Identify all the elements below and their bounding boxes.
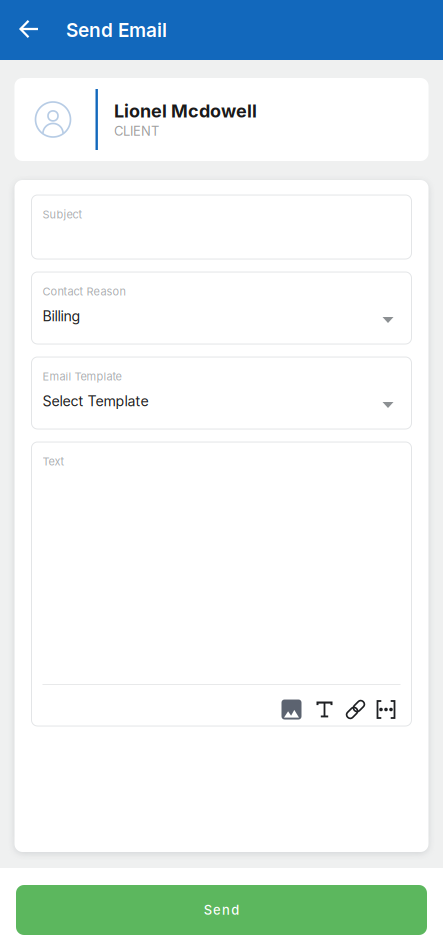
staticText: Lionel Mcdowell: [114, 100, 257, 122]
staticText: Select Template: [42, 392, 148, 410]
button[interactable]: Email Template: [31, 357, 411, 429]
button[interactable]: Insert merge field: [376, 700, 395, 719]
staticText: Text: [42, 455, 64, 468]
staticText: Contact Reason: [42, 285, 125, 298]
button[interactable]: Insert link: [346, 700, 364, 718]
button[interactable]: Text format: [316, 701, 332, 717]
staticText: Subject: [42, 208, 82, 221]
button[interactable]: Contact Reason: [31, 272, 411, 344]
staticText: Billing: [42, 307, 80, 325]
button[interactable]: Subject: [31, 195, 411, 259]
button[interactable]: Lionel Mcdowell: [14, 78, 428, 161]
staticText: CLIENT: [114, 123, 159, 139]
button[interactable]: Send Email: [49, 9, 173, 51]
button[interactable]: Insert image: [280, 698, 302, 720]
button[interactable]: Back: [10, 9, 49, 51]
button[interactable]: Send: [16, 885, 427, 935]
staticText: Email Template: [42, 370, 121, 383]
staticText: Send Email: [66, 18, 167, 41]
staticText: Send: [204, 902, 239, 918]
